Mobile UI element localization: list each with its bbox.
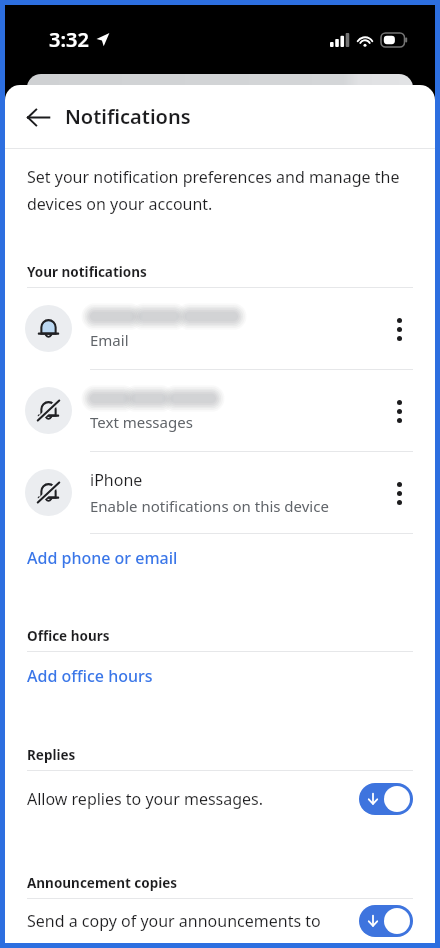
button[interactable]: Allow replies to your messages. bbox=[5, 771, 435, 827]
staticText: iPhone bbox=[90, 469, 143, 491]
staticText: Set your notification preferences and ma… bbox=[27, 166, 400, 188]
staticText: Notifications bbox=[65, 103, 191, 130]
button[interactable]: Add phone or email bbox=[5, 534, 435, 582]
staticText: Email bbox=[90, 330, 129, 350]
staticText: Replies bbox=[27, 746, 76, 764]
button[interactable]: More options bbox=[377, 471, 421, 515]
button[interactable]: Toggle on bbox=[359, 783, 413, 815]
staticText: Text messages bbox=[90, 412, 193, 432]
staticText: Announcement copies bbox=[27, 874, 178, 892]
staticText: Add phone or email bbox=[27, 547, 178, 569]
button[interactable]: Text messages bbox=[5, 370, 435, 451]
staticText: Allow replies to your messages. bbox=[27, 788, 359, 810]
button[interactable]: More options bbox=[377, 389, 421, 433]
button[interactable]: Back bbox=[15, 94, 61, 140]
staticText: 3:32 bbox=[49, 26, 89, 53]
staticText: Send a copy of your announcements to bbox=[27, 910, 359, 932]
staticText: Enable notifications on this device bbox=[90, 496, 329, 516]
button[interactable]: More options bbox=[377, 307, 421, 351]
button[interactable]: iPhone bbox=[5, 452, 435, 533]
staticText: Office hours bbox=[27, 627, 110, 645]
button[interactable]: Email bbox=[5, 288, 435, 369]
staticText: Your notifications bbox=[27, 263, 147, 281]
staticText: Add office hours bbox=[27, 665, 153, 687]
staticText: devices on your account. bbox=[27, 193, 213, 215]
button[interactable]: Send a copy of your announcements to bbox=[5, 899, 435, 943]
button[interactable]: Add office hours bbox=[5, 652, 435, 700]
button[interactable]: Toggle on bbox=[359, 905, 413, 937]
